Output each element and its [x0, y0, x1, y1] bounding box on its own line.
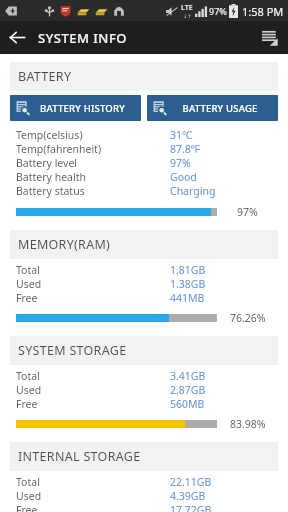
- staticText: 1.38GB: [170, 277, 206, 291]
- staticText: Used: [16, 277, 170, 291]
- staticText: 76.26%: [230, 311, 266, 325]
- staticText: Temp(fahrenheit): [16, 142, 170, 156]
- staticText: Battery level: [16, 156, 170, 170]
- staticText: 441MB: [170, 291, 205, 305]
- staticText: Used: [16, 383, 170, 397]
- staticText: 2.87GB: [170, 383, 206, 397]
- staticText: 22.11GB: [170, 475, 212, 489]
- staticText: 17.72GB: [170, 503, 212, 512]
- staticText: 1:58 PM: [242, 4, 284, 19]
- staticText: 3.41GB: [170, 369, 206, 383]
- staticText: ↓↑: [183, 13, 192, 19]
- staticText: 97%: [170, 156, 191, 170]
- button[interactable]: Back: [0, 21, 34, 54]
- staticText: Total: [16, 475, 170, 489]
- button[interactable]: More options: [254, 22, 286, 54]
- staticText: Good: [170, 170, 197, 184]
- staticText: Battery status: [16, 184, 170, 198]
- staticText: Total: [16, 263, 170, 277]
- staticText: INTERNAL STORAGE: [18, 448, 141, 465]
- staticText: Free: [16, 291, 170, 305]
- staticText: 97%: [209, 5, 227, 17]
- staticText: MEMORY(RAM): [18, 236, 111, 253]
- staticText: BATTERY: [18, 68, 72, 85]
- button[interactable]: BATTERY USAGE: [147, 95, 278, 121]
- button[interactable]: BATTERY HISTORY: [10, 95, 141, 121]
- staticText: 560MB: [170, 397, 205, 411]
- staticText: Charging: [170, 184, 216, 198]
- staticText: 83.98%: [230, 417, 266, 431]
- staticText: Free: [16, 397, 170, 411]
- staticText: Total: [16, 369, 170, 383]
- staticText: 97%: [237, 205, 258, 219]
- staticText: Battery health: [16, 170, 170, 184]
- staticText: 4.39GB: [170, 489, 206, 503]
- staticText: SYSTEM INFO: [38, 29, 127, 47]
- staticText: LTE: [181, 3, 193, 13]
- staticText: BATTERY USAGE: [182, 102, 258, 115]
- staticText: 1.81GB: [170, 263, 206, 277]
- staticText: 87.8℉: [170, 142, 201, 156]
- staticText: BATTERY HISTORY: [40, 102, 125, 115]
- staticText: SYSTEM STORAGE: [18, 342, 127, 359]
- staticText: Temp(celsius): [16, 128, 170, 142]
- staticText: Free: [16, 503, 170, 512]
- staticText: 31℃: [170, 128, 193, 142]
- staticText: Used: [16, 489, 170, 503]
